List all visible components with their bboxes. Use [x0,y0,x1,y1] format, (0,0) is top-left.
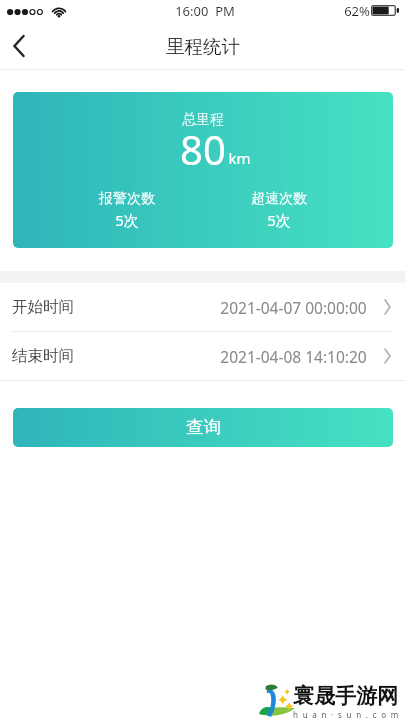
staticText: 总里程 [182,111,224,129]
staticText: 16:00 PM [175,2,235,20]
staticText: 报警次数 [99,190,155,208]
staticText: 5次 [267,210,291,230]
button[interactable]: 总里程 [13,92,393,248]
staticText: 开始时间 [12,297,74,317]
staticText: 2021-04-08 14:10:20 [220,346,367,367]
staticText: 62% [344,2,370,20]
staticText: huan·sun.com [293,709,403,720]
staticText: 结束时间 [12,346,74,366]
button[interactable]: 超速次数 [203,190,355,230]
button[interactable]: 结束时间 [0,332,405,380]
button[interactable]: 开始时间 [0,283,405,331]
staticText: 超速次数 [251,190,307,208]
staticText: km [228,148,251,168]
staticText: 2021-04-07 00:00:00 [220,297,367,318]
staticText: 80 [180,122,226,176]
staticText: 查询 [186,416,221,438]
staticText: 寰晟手游网 [293,683,398,709]
button[interactable]: 查询 [13,408,393,447]
staticText: 5次 [115,210,139,230]
button[interactable]: Back [0,24,38,70]
staticText: 里程统计 [166,35,240,58]
button[interactable]: 报警次数 [51,190,203,230]
